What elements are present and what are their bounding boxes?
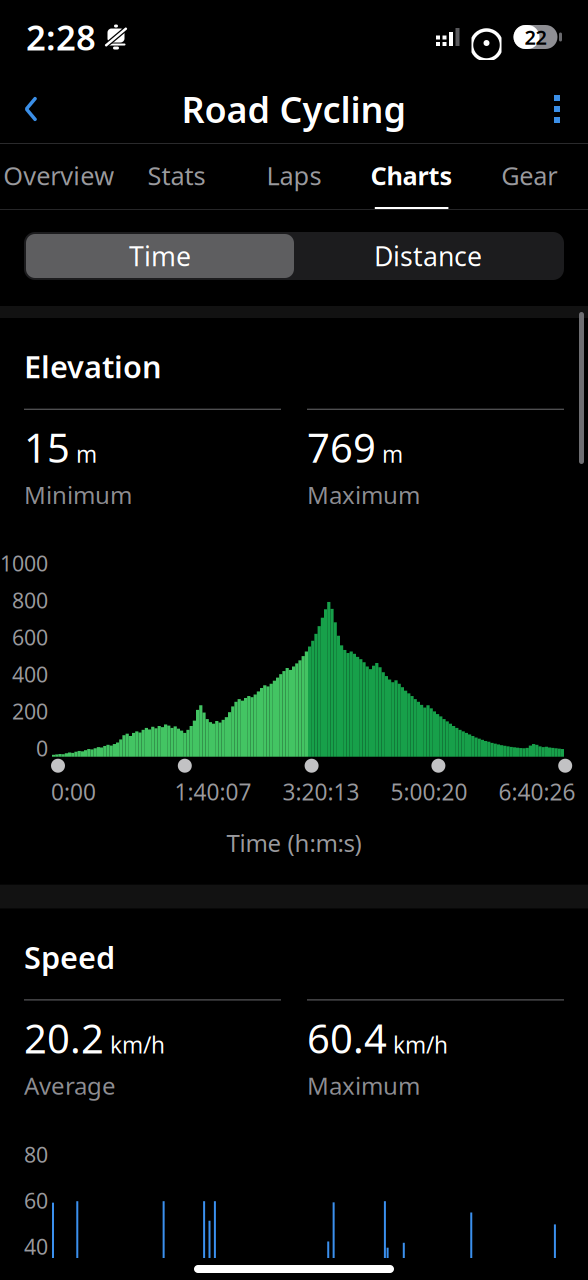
staticText: Maximum	[307, 1069, 420, 1101]
staticText: 2:28	[26, 14, 96, 60]
button[interactable]: Overview	[0, 144, 118, 210]
staticText: 3:20:13	[282, 777, 359, 807]
staticText: m	[76, 439, 97, 469]
button[interactable]: Charts	[353, 144, 470, 210]
staticText: 1000	[0, 549, 48, 577]
staticText: Laps	[266, 159, 321, 192]
staticText: Distance	[374, 238, 482, 274]
staticText: Speed	[24, 937, 115, 977]
button[interactable]: Distance	[294, 234, 562, 278]
staticText: 6:40:26	[498, 777, 575, 807]
staticText: km/h	[393, 1030, 448, 1060]
button[interactable]: Laps	[235, 144, 353, 210]
staticText: 15	[24, 421, 70, 474]
staticText: Average	[24, 1069, 116, 1101]
staticText: Road Cycling	[181, 85, 406, 133]
staticText: Gear	[501, 159, 557, 192]
button[interactable]: Stats	[118, 144, 235, 210]
staticText: Charts	[371, 159, 453, 192]
staticText: 0:00	[51, 777, 96, 807]
staticText: 0	[36, 734, 48, 762]
staticText: 22	[524, 24, 546, 50]
staticText: 769	[307, 421, 376, 474]
staticText: Stats	[147, 159, 205, 192]
staticText: 20.2	[24, 1011, 104, 1064]
staticText: Elevation	[24, 346, 162, 387]
staticText: m	[382, 439, 403, 469]
staticText: 400	[12, 660, 48, 688]
button[interactable]: More options	[526, 81, 588, 137]
staticText: 40	[24, 1232, 48, 1260]
staticText: 200	[12, 697, 48, 725]
staticText: 600	[12, 623, 48, 651]
button[interactable]: Back	[0, 81, 62, 137]
staticText: Maximum	[307, 479, 420, 511]
staticText: 80	[24, 1140, 48, 1168]
button[interactable]: Gear	[470, 144, 588, 210]
staticText: Overview	[3, 159, 114, 192]
staticText: Time (h:m:s)	[226, 827, 361, 859]
staticText: 60	[24, 1186, 48, 1214]
staticText: km/h	[110, 1030, 165, 1060]
staticText: 5:00:20	[390, 777, 467, 807]
staticText: 1:40:07	[174, 777, 251, 807]
staticText: 60.4	[307, 1011, 387, 1064]
staticText: Minimum	[24, 479, 132, 511]
staticText: Time	[129, 238, 191, 274]
staticText: 800	[12, 586, 48, 614]
button[interactable]: Time	[26, 234, 294, 278]
